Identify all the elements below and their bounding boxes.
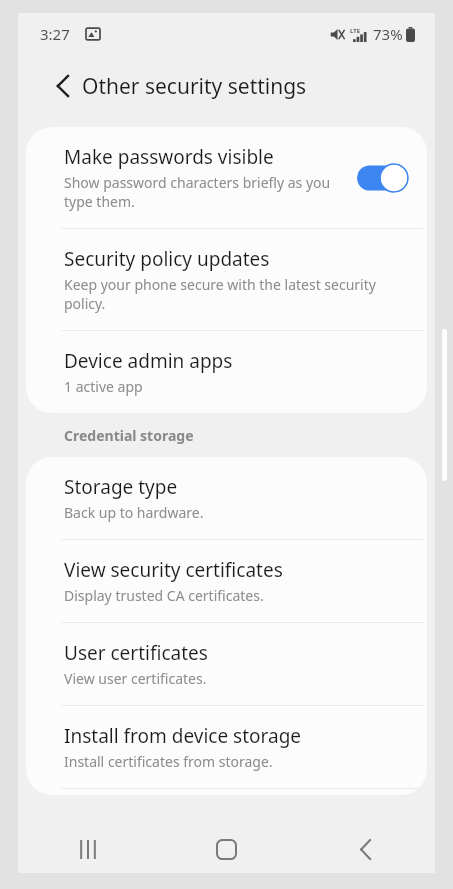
staticText: Security policy updates bbox=[64, 246, 270, 272]
staticText: 73% bbox=[373, 24, 403, 44]
button[interactable]: Make passwords visible bbox=[26, 127, 427, 228]
staticText: Install certificates from storage. bbox=[64, 752, 273, 771]
staticText: Back up to hardware. bbox=[64, 503, 204, 522]
staticText: Device admin apps bbox=[64, 348, 233, 374]
staticText: Show password characters briefly as you … bbox=[64, 173, 331, 211]
button[interactable]: Navigate up bbox=[44, 68, 80, 104]
staticText: LTE bbox=[350, 27, 361, 35]
staticText: User certificates bbox=[64, 640, 208, 666]
button[interactable]: Home bbox=[157, 825, 296, 873]
staticText: View security certificates bbox=[64, 557, 283, 583]
button[interactable]: Make passwords visible toggle bbox=[357, 163, 409, 193]
staticText: Make passwords visible bbox=[64, 144, 274, 170]
button[interactable]: Device admin apps bbox=[26, 331, 427, 413]
staticText: Storage type bbox=[64, 474, 178, 500]
button[interactable]: Back bbox=[296, 825, 435, 873]
staticText: View user certificates. bbox=[64, 669, 207, 688]
staticText: Install from device storage bbox=[64, 723, 302, 749]
button[interactable]: Security policy updates bbox=[26, 229, 427, 330]
button[interactable]: View security certificates bbox=[26, 540, 427, 622]
staticText: Other security settings bbox=[82, 72, 307, 101]
staticText: 1 active app bbox=[64, 377, 143, 396]
staticText: Display trusted CA certificates. bbox=[64, 586, 264, 605]
button[interactable]: Install from device storage bbox=[26, 706, 427, 788]
staticText: 3:27 bbox=[40, 24, 70, 44]
button[interactable]: User certificates bbox=[26, 623, 427, 705]
button[interactable]: Recent apps bbox=[18, 825, 157, 873]
button[interactable]: Storage type bbox=[26, 457, 427, 539]
staticText: Credential storage bbox=[64, 426, 194, 445]
staticText: Keep your phone secure with the latest s… bbox=[64, 275, 376, 313]
